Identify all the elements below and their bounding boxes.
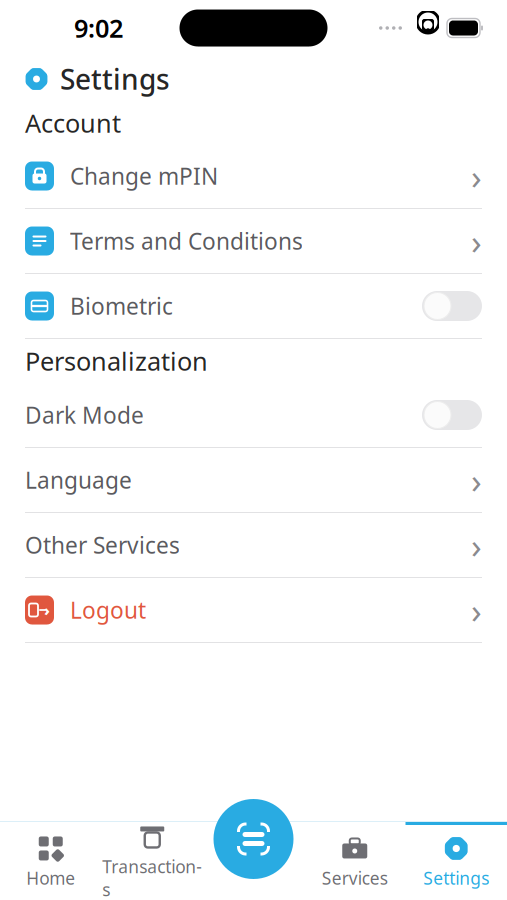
staticText: ›	[44, 600, 50, 620]
button[interactable]: Home	[0, 822, 101, 900]
staticText: Personalization	[25, 344, 208, 378]
staticText: Biometric	[70, 291, 173, 321]
staticText: Other Services	[25, 530, 180, 560]
button[interactable]: Scan	[203, 822, 304, 900]
button[interactable]: Services	[304, 822, 405, 900]
button[interactable]: Settings	[405, 822, 507, 900]
staticText: ›	[471, 457, 482, 503]
staticText: Settings	[423, 866, 489, 889]
staticText: Change mPIN	[70, 161, 218, 191]
staticText: Language	[25, 465, 132, 495]
staticText: ›	[471, 218, 482, 264]
button[interactable]: Dark Mode	[0, 383, 507, 448]
staticText: Account	[25, 106, 121, 140]
button[interactable]: Transactions	[101, 822, 203, 900]
button[interactable]: Other Services	[0, 513, 507, 578]
staticText: Transactions	[102, 855, 202, 900]
button[interactable]: Terms and Conditions	[0, 209, 507, 274]
button[interactable]: Change mPIN	[0, 144, 507, 209]
staticText: ›	[471, 153, 482, 199]
staticText: 9:02	[74, 11, 123, 45]
button[interactable]: Language	[0, 448, 507, 513]
staticText: Settings	[60, 60, 170, 98]
button[interactable]: ›	[0, 578, 507, 643]
staticText: Logout	[70, 595, 146, 625]
button[interactable]: Biometric	[0, 274, 507, 339]
staticText: Home	[26, 866, 75, 889]
staticText: ›	[471, 587, 482, 633]
staticText: Dark Mode	[25, 400, 144, 430]
staticText: ›	[471, 522, 482, 568]
staticText: Terms and Conditions	[70, 226, 303, 256]
button[interactable]: Scan	[213, 799, 293, 879]
staticText: Services	[322, 866, 388, 889]
